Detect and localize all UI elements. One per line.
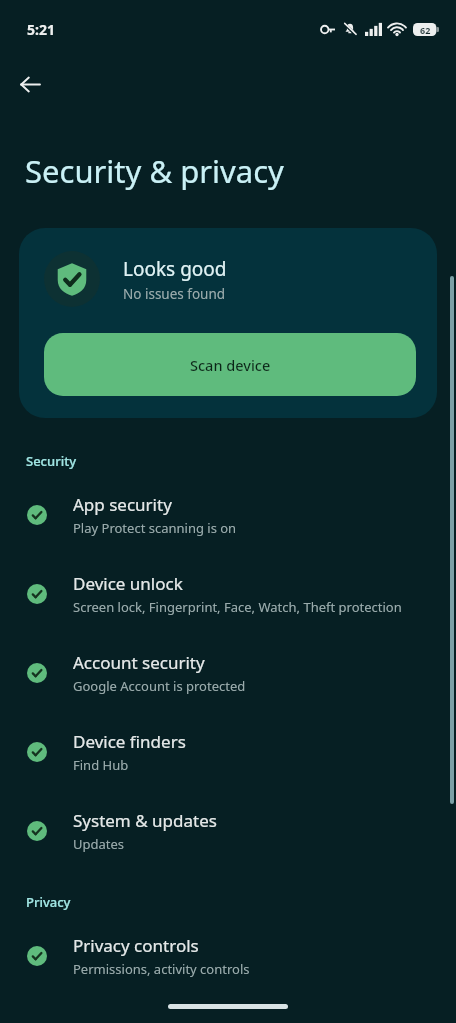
button[interactable]: Device finders: [0, 730, 456, 774]
button[interactable]: System & updates: [0, 809, 456, 853]
staticText: System & updates: [73, 809, 217, 832]
button[interactable]: Looks good: [19, 228, 437, 418]
staticText: Screen lock, Fingerprint, Face, Watch, T…: [73, 598, 402, 616]
staticText: Device finders: [73, 730, 186, 753]
staticText: Google Account is protected: [73, 677, 246, 695]
staticText: Updates: [73, 835, 125, 853]
staticText: Security & privacy: [25, 150, 284, 192]
staticText: App security: [73, 493, 172, 516]
staticText: Find Hub: [73, 756, 129, 774]
staticText: Privacy controls: [73, 934, 199, 957]
staticText: Security: [26, 452, 76, 470]
staticText: Account security: [73, 651, 205, 674]
staticText: Play Protect scanning is on: [73, 519, 237, 537]
staticText: Scan device: [190, 355, 271, 375]
staticText: Device unlock: [73, 572, 183, 595]
staticText: 62: [420, 24, 431, 36]
staticText: No issues found: [123, 285, 226, 303]
staticText: Privacy: [26, 893, 71, 911]
staticText: 5:21: [27, 20, 55, 39]
staticText: Looks good: [123, 256, 227, 282]
button[interactable]: Account security: [0, 651, 456, 695]
button[interactable]: App security: [0, 493, 456, 537]
staticText: Permissions, activity controls: [73, 960, 250, 978]
button[interactable]: Scan device: [44, 333, 416, 396]
button[interactable]: Device unlock: [0, 572, 456, 616]
button[interactable]: Back: [8, 62, 52, 106]
button[interactable]: Privacy controls: [0, 934, 456, 978]
